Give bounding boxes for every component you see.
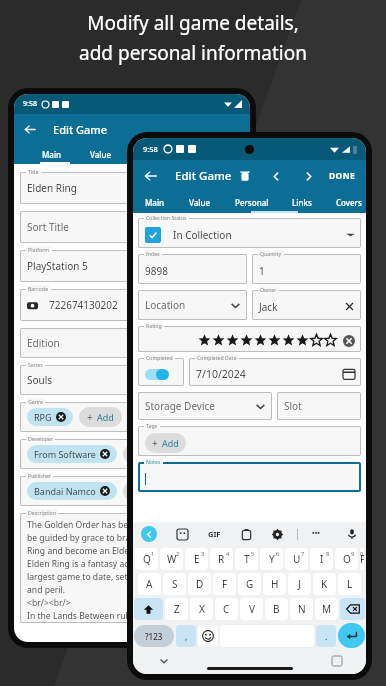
button[interactable] <box>198 625 218 647</box>
staticText: A <box>146 577 153 591</box>
button[interactable]: Links <box>292 197 312 208</box>
button[interactable]: H <box>263 573 286 595</box>
button[interactable]: L <box>338 573 361 595</box>
button[interactable]: U <box>285 548 308 570</box>
button[interactable]: Clipboard <box>241 529 252 540</box>
staticText: Storage Device <box>145 399 215 413</box>
button[interactable]: Main <box>42 149 62 160</box>
staticText: Sort Title <box>27 220 69 234</box>
staticText: 9 <box>351 550 355 557</box>
button[interactable]: S <box>163 573 186 595</box>
button[interactable]: ?123 <box>134 625 174 647</box>
staticText: Edition <box>27 336 60 350</box>
button[interactable]: Delete <box>239 170 251 182</box>
button[interactable]: B <box>265 598 288 620</box>
button[interactable] <box>145 227 161 243</box>
staticText: Edit Game <box>175 168 232 184</box>
staticText: K <box>321 577 328 591</box>
button[interactable]: + <box>123 481 166 501</box>
staticText: + <box>131 447 137 461</box>
button[interactable]: Z <box>165 598 188 620</box>
staticText: 8 <box>326 550 330 557</box>
staticText: Rating <box>146 322 162 329</box>
button[interactable]: O <box>335 548 358 570</box>
staticText: From Software <box>34 448 96 460</box>
staticText: Bandai Namco <box>34 485 96 497</box>
button[interactable]: Covers <box>336 197 362 208</box>
staticText: 9:58 <box>143 144 158 154</box>
button[interactable]: + <box>79 407 122 427</box>
staticText: Modify all game details, <box>14 10 372 36</box>
staticText: <br/><br/> <box>27 597 71 609</box>
button[interactable]: F <box>213 573 236 595</box>
button[interactable]: Value <box>189 197 211 208</box>
button[interactable]: Y <box>260 548 283 570</box>
button[interactable]: C <box>215 598 238 620</box>
button[interactable]: Value <box>90 149 112 160</box>
staticText: PlayStation 5 <box>27 259 88 273</box>
button[interactable]: Sticker <box>177 529 188 540</box>
button[interactable]: Back <box>144 169 158 183</box>
staticText: C <box>223 602 230 616</box>
staticText: Slot <box>284 399 302 413</box>
button[interactable]: Enter <box>338 623 365 648</box>
button[interactable]: RPG <box>27 408 73 426</box>
button[interactable]: DONE <box>329 170 356 182</box>
button[interactable]: , <box>176 625 196 647</box>
button[interactable]: W <box>160 548 183 570</box>
staticText: 1 <box>259 264 265 278</box>
button[interactable]: G <box>238 573 261 595</box>
button[interactable]: P <box>360 548 364 570</box>
button[interactable]: Next <box>301 169 315 183</box>
staticText: and peril. <box>27 584 66 596</box>
staticText: RPG <box>34 411 52 423</box>
button[interactable]: Settings <box>272 529 283 540</box>
staticText: 2 <box>176 550 180 557</box>
button[interactable]: + <box>123 444 166 464</box>
button[interactable]: X <box>190 598 213 620</box>
staticText: Add <box>141 485 158 497</box>
button[interactable]: R <box>210 548 233 570</box>
button[interactable]: + <box>145 433 186 453</box>
button[interactable]: A <box>138 573 161 595</box>
button[interactable]: N <box>290 598 313 620</box>
button[interactable]: GIF <box>208 529 221 539</box>
button[interactable]: K <box>313 573 336 595</box>
staticText: W <box>167 552 177 566</box>
staticText: Add <box>141 448 158 460</box>
staticText: Edit Game <box>53 122 108 137</box>
button[interactable]: Personal <box>235 197 269 208</box>
button[interactable]: From Software <box>27 445 117 463</box>
staticText: be guided by grace to bran <box>27 532 136 544</box>
button[interactable]: . <box>316 625 336 647</box>
staticText: Add <box>162 437 179 449</box>
button[interactable] <box>340 598 365 620</box>
button[interactable]: E <box>185 548 208 570</box>
button[interactable]: Main <box>145 197 165 208</box>
staticText: Description <box>28 509 56 516</box>
staticText: T <box>244 552 250 566</box>
button[interactable]: Previous <box>269 169 283 183</box>
button[interactable]: I <box>310 548 333 570</box>
button[interactable]: J <box>288 573 311 595</box>
button[interactable]: T <box>235 548 258 570</box>
staticText: 6 <box>276 550 280 557</box>
button[interactable]: D <box>188 573 211 595</box>
button[interactable]: Back <box>141 526 157 542</box>
button[interactable] <box>145 369 169 380</box>
button[interactable]: Q <box>135 548 158 570</box>
button[interactable]: Back <box>24 123 37 136</box>
staticText: The Golden Order has been <box>27 519 139 531</box>
staticText: , <box>185 630 188 642</box>
staticText: Title <box>28 168 39 175</box>
button[interactable]: M <box>315 598 338 620</box>
staticText: Y <box>269 552 275 566</box>
staticText: + <box>87 410 93 424</box>
button[interactable]: ••• <box>312 529 320 539</box>
button[interactable] <box>134 598 163 620</box>
button[interactable]: Voice input <box>346 528 358 540</box>
button[interactable]: V <box>240 598 263 620</box>
staticText: 5 <box>251 550 255 557</box>
button[interactable]: Bandai Namco <box>27 482 117 500</box>
